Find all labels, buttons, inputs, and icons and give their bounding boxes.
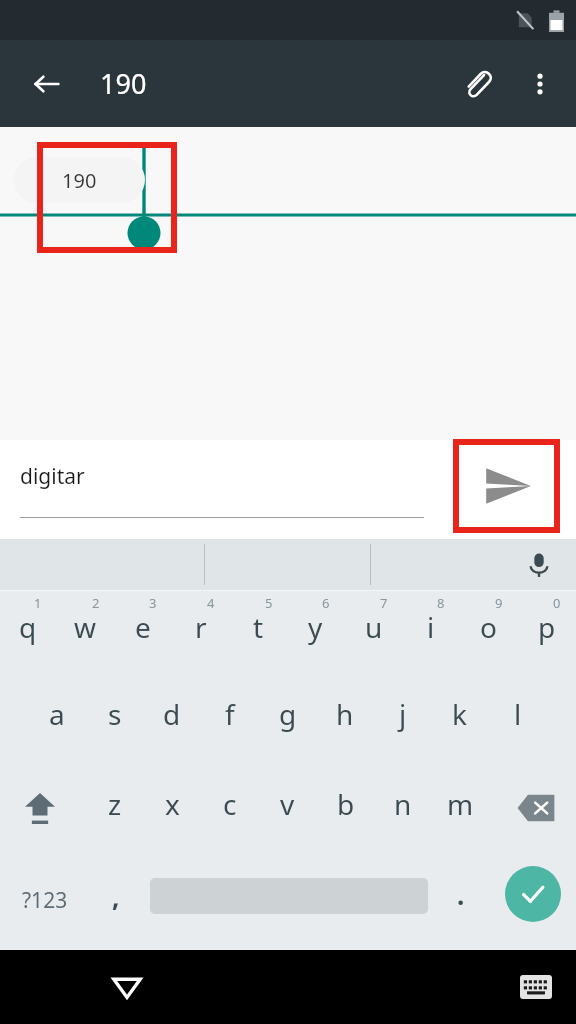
staticText: 6: [322, 594, 330, 612]
staticText: z: [108, 785, 122, 823]
staticText: b: [337, 785, 355, 823]
button[interactable]: j: [374, 676, 431, 764]
staticText: .: [457, 877, 465, 912]
button[interactable]: .: [434, 852, 488, 949]
staticText: 9: [495, 594, 503, 612]
button[interactable]: x: [144, 764, 201, 852]
staticText: t: [253, 608, 264, 646]
button[interactable]: 4: [172, 591, 229, 676]
staticText: l: [514, 695, 522, 733]
staticText: 5: [265, 594, 273, 612]
button[interactable]: s: [86, 676, 143, 764]
staticText: d: [163, 695, 181, 733]
button[interactable]: b: [317, 764, 374, 852]
staticText: k: [452, 695, 467, 733]
staticText: 1: [34, 594, 42, 612]
button[interactable]: Hide keyboard: [98, 958, 156, 1016]
button[interactable]: 6: [287, 591, 344, 676]
button[interactable]: z: [86, 764, 143, 852]
staticText: f: [225, 695, 235, 733]
staticText: y: [308, 608, 323, 646]
button[interactable]: Change keyboard: [510, 961, 562, 1013]
staticText: v: [280, 785, 295, 823]
staticText: r: [195, 608, 207, 646]
button[interactable]: More options: [514, 58, 566, 110]
staticText: g: [279, 695, 297, 733]
staticText: 190: [62, 167, 97, 194]
staticText: u: [365, 608, 383, 646]
staticText: i: [427, 608, 435, 646]
staticText: digitar: [20, 462, 85, 491]
button[interactable]: m: [432, 764, 489, 852]
staticText: 7: [380, 594, 388, 612]
button[interactable]: l: [489, 676, 546, 764]
button[interactable]: Attach: [448, 55, 506, 113]
button[interactable]: g: [259, 676, 316, 764]
button[interactable]: 0: [518, 591, 575, 676]
staticText: 3: [149, 594, 157, 612]
button[interactable]: k: [431, 676, 488, 764]
button[interactable]: 3: [114, 591, 171, 676]
button[interactable]: Send: [456, 442, 557, 530]
button[interactable]: 2: [57, 591, 114, 676]
button[interactable]: 1: [0, 591, 56, 676]
staticText: q: [19, 608, 37, 646]
button[interactable]: f: [201, 676, 258, 764]
staticText: x: [165, 785, 180, 823]
button[interactable]: ,: [88, 852, 144, 949]
staticText: a: [49, 695, 65, 733]
staticText: m: [447, 785, 474, 823]
staticText: 2: [92, 594, 100, 612]
button[interactable]: n: [374, 764, 431, 852]
staticText: w: [74, 608, 97, 646]
button[interactable]: a: [28, 676, 85, 764]
button[interactable]: Voice input: [516, 542, 562, 588]
button[interactable]: ?123: [8, 852, 82, 949]
button[interactable]: Enter: [505, 866, 561, 922]
staticText: j: [399, 695, 407, 733]
button[interactable]: 8: [402, 591, 459, 676]
button[interactable]: 5: [230, 591, 287, 676]
staticText: 4: [207, 594, 215, 612]
button[interactable]: Backspace: [507, 764, 565, 852]
button[interactable]: Shift: [11, 764, 69, 852]
button[interactable]: 9: [460, 591, 517, 676]
staticText: 190: [100, 65, 147, 102]
button[interactable]: 7: [345, 591, 402, 676]
staticText: n: [394, 785, 412, 823]
button[interactable]: digitar: [20, 462, 424, 518]
staticText: c: [223, 785, 237, 823]
button[interactable]: h: [316, 676, 373, 764]
staticText: s: [108, 695, 122, 733]
staticText: o: [480, 608, 497, 646]
staticText: h: [336, 695, 354, 733]
button[interactable]: Back: [18, 55, 76, 113]
button[interactable]: 190: [14, 157, 145, 203]
staticText: ?123: [22, 886, 68, 915]
staticText: 8: [437, 594, 445, 612]
staticText: e: [135, 608, 151, 646]
button[interactable]: d: [143, 676, 200, 764]
staticText: 0: [553, 594, 561, 612]
button[interactable]: v: [259, 764, 316, 852]
staticText: ,: [112, 879, 120, 914]
button[interactable]: c: [201, 764, 258, 852]
staticText: p: [538, 608, 556, 646]
